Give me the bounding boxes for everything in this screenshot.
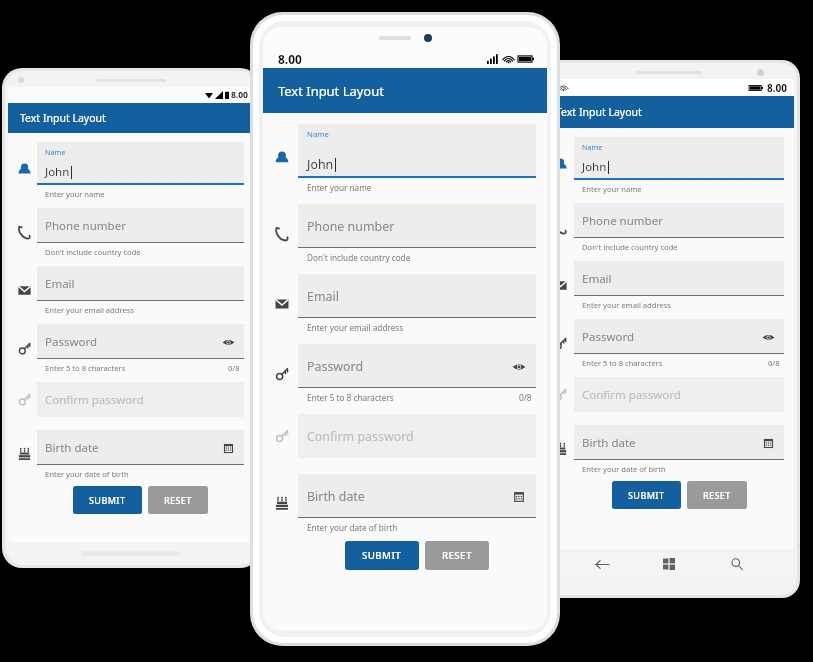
staticText: Phone number [582,213,663,229]
staticText: Birth date [582,435,636,451]
staticText: Don't include country code [45,247,141,257]
staticText: Password [45,334,98,350]
staticText: Password [582,329,635,345]
staticText: Enter 5 to 8 characters [582,358,663,368]
button[interactable]: Password [37,324,244,359]
button[interactable]: Home [659,554,679,574]
button[interactable]: Back [592,554,612,574]
button[interactable]: Email [574,261,784,296]
staticText: SUBMIT [362,549,402,562]
staticText: 8.00 [231,89,248,101]
button[interactable]: Email [298,274,536,318]
button[interactable]: Confirm password [574,377,784,412]
button[interactable]: RESET [148,486,208,514]
staticText: John [582,159,607,175]
staticText: Enter your name [307,182,372,193]
staticText: Name [45,147,66,157]
button[interactable]: Pick date [759,434,777,452]
staticText: 8.00 [767,81,787,95]
button[interactable]: Pick date [509,487,528,506]
staticText: 0/8 [768,358,780,368]
staticText: Enter your date of birth [45,469,129,479]
button[interactable]: Name [574,137,784,180]
button[interactable]: Email [37,266,244,301]
button[interactable]: Birth date [298,474,536,518]
staticText: 0/8 [228,363,240,373]
staticText: Text Input Layout [556,105,642,119]
button[interactable]: Name [37,142,244,185]
staticText: Confirm password [307,428,414,445]
button[interactable]: Search [727,554,747,574]
button[interactable]: Password [298,344,536,388]
staticText: RESET [164,494,192,506]
staticText: Email [582,271,612,287]
staticText: Confirm password [45,392,144,408]
staticText: Email [307,288,339,305]
staticText: SUBMIT [628,489,665,501]
staticText: Enter your date of birth [582,464,666,474]
staticText: Phone number [45,218,126,234]
staticText: Enter 5 to 8 characters [45,363,126,373]
staticText: Enter your email address [45,305,134,315]
staticText: Name [582,142,603,152]
staticText: Phone number [307,218,395,235]
button[interactable]: RESET [425,541,489,570]
staticText: Text Input Layout [278,82,384,100]
staticText: Enter 5 to 8 characters [307,392,394,403]
button[interactable]: Phone number [298,204,536,248]
staticText: Enter your name [45,189,105,199]
staticText: Don't include country code [307,252,411,263]
staticText: SUBMIT [89,494,126,506]
staticText: Birth date [307,488,365,505]
button[interactable]: Birth date [574,425,784,460]
staticText: Enter your email address [307,322,404,333]
staticText: John [45,164,70,180]
staticText: Enter your date of birth [307,522,398,533]
staticText: 0/8 [519,392,532,403]
button[interactable]: Confirm password [298,414,536,458]
staticText: Password [307,358,364,375]
button[interactable]: SUBMIT [612,481,681,509]
button[interactable]: Password [574,319,784,354]
button[interactable]: SUBMIT [73,486,142,514]
staticText: Email [45,276,75,292]
staticText: Enter your email address [582,300,671,310]
staticText: 8.00 [278,51,302,67]
staticText: Confirm password [582,387,681,403]
button[interactable]: Show password [759,328,777,346]
button[interactable]: Phone number [574,203,784,238]
staticText: Birth date [45,440,99,456]
button[interactable]: SUBMIT [345,541,419,570]
button[interactable]: Phone number [37,208,244,243]
staticText: Name [307,129,329,140]
staticText: John [307,156,334,173]
button[interactable]: Confirm password [37,382,244,417]
staticText: Enter your name [582,184,642,194]
button[interactable]: Birth date [37,430,244,465]
button[interactable]: Show password [219,333,237,351]
staticText: Text Input Layout [20,111,106,125]
staticText: Don't include country code [582,242,678,252]
button[interactable]: Name [298,124,536,178]
staticText: RESET [703,489,731,501]
staticText: RESET [442,549,472,562]
button[interactable]: RESET [687,481,747,509]
button[interactable]: Pick date [219,439,237,457]
button[interactable]: Show password [509,357,528,376]
